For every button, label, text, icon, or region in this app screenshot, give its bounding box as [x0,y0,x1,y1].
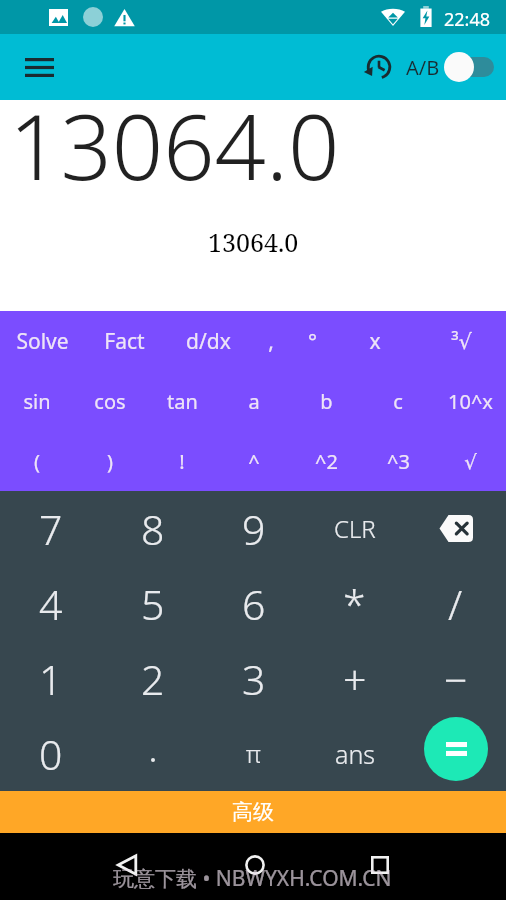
button[interactable]: A/B toggle [444,52,494,82]
staticText: 4 [39,576,63,632]
button[interactable]: Back [107,845,147,885]
button[interactable]: ° [290,311,334,371]
staticText: cos [94,388,126,415]
staticText: d/dx [186,327,231,356]
button[interactable]: ³√ [416,311,506,371]
staticText: − [444,651,468,707]
button[interactable]: 高级 [0,791,506,833]
staticText: π [246,737,261,770]
button[interactable]: Solve [0,311,85,371]
staticText: CLR [334,512,376,545]
staticText: ^ [248,448,260,475]
button[interactable]: ( [0,431,73,491]
button[interactable] [405,716,506,791]
staticText: 9 [242,501,266,557]
button[interactable]: √ [434,431,506,491]
button[interactable]: * [304,566,405,641]
button[interactable]: sin [0,371,73,431]
button[interactable]: 6 [203,566,304,641]
staticText: b [320,388,333,415]
button[interactable]: 9 [203,491,304,566]
staticText: ! [179,448,185,475]
button[interactable]: Backspace [405,491,506,566]
staticText: ^2 [315,448,338,475]
button[interactable]: 4 [0,566,102,641]
button[interactable]: c [362,371,434,431]
button[interactable]: / [405,566,506,641]
staticText: 10^x [448,388,493,415]
staticText: 7 [39,501,63,557]
staticText: 5 [141,576,165,632]
button[interactable]: ! [146,431,218,491]
button[interactable]: 7 [0,491,102,566]
button[interactable]: 10^x [434,371,506,431]
other: Backspace [438,515,473,542]
staticText: Fact [104,327,145,356]
button[interactable]: Menu [15,43,63,91]
staticText: / [448,576,463,632]
button[interactable] [102,716,203,791]
button[interactable]: ans [304,716,405,791]
button[interactable]: , [252,311,290,371]
button[interactable]: cos [73,371,146,431]
staticText: 2 [141,651,165,707]
button[interactable]: x [334,311,416,371]
button[interactable]: 0 [0,716,102,791]
staticText: sin [23,388,51,415]
staticText: ans [335,737,375,771]
staticText: 1 [39,651,63,707]
button[interactable]: 3 [203,641,304,716]
staticText: ) [107,448,113,475]
staticText: √ [464,450,477,473]
staticText: x [369,327,381,356]
staticText: tan [167,388,198,415]
button[interactable]: Fact [85,311,164,371]
staticText: Solve [16,327,69,356]
button[interactable]: π [203,716,304,791]
staticText: ^3 [387,448,410,475]
staticText: c [393,388,403,415]
staticText: * [343,576,366,632]
staticText: , [268,327,274,356]
button[interactable]: 5 [102,566,203,641]
button[interactable]: 1 [0,641,102,716]
staticText: + [343,651,367,707]
staticText: A/B [406,54,440,81]
button[interactable]: + [304,641,405,716]
staticText: 8 [141,501,165,557]
staticText: a [248,388,260,415]
staticText: 3 [242,651,266,707]
staticText: 22:48 [444,7,491,32]
staticText: 13064.0 [9,84,340,207]
button[interactable]: 8 [102,491,203,566]
staticText: 6 [242,576,266,632]
staticText: ° [308,327,317,356]
button[interactable]: a [218,371,290,431]
button[interactable]: ^3 [362,431,434,491]
staticText: 13064.0 [208,225,299,259]
button[interactable]: Recents [360,845,400,885]
button[interactable]: ^2 [290,431,362,491]
staticText: ³√ [451,327,472,356]
button[interactable]: − [405,641,506,716]
staticText: 玩意下载 • NBWYXH.COM.CN [113,864,392,893]
button[interactable]: tan [146,371,218,431]
button[interactable]: ^ [218,431,290,491]
staticText: 0 [39,726,63,782]
button[interactable]: d/dx [164,311,252,371]
button[interactable]: ) [73,431,146,491]
staticText: 高级 [232,799,274,825]
button[interactable]: Equals [424,717,488,781]
button[interactable]: b [290,371,362,431]
button[interactable]: Home [235,845,275,885]
button[interactable]: 2 [102,641,203,716]
button[interactable]: History [363,51,395,83]
staticText: ( [34,448,40,475]
button[interactable]: CLR [304,491,405,566]
